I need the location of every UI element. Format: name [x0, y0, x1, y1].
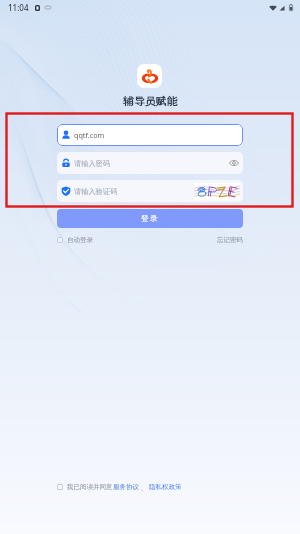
button[interactable]: 忘记密码: [217, 236, 243, 244]
staticText: 我已阅读并同意: [67, 483, 113, 491]
button[interactable]: 隐私权政策: [149, 483, 182, 491]
button[interactable]: 请输入验证码: [57, 180, 243, 202]
staticText: 辅导员赋能: [123, 95, 178, 108]
button[interactable]: 登录: [57, 209, 243, 228]
staticText: 自动登录: [67, 236, 93, 244]
button[interactable]: 服务协议: [113, 483, 139, 491]
staticText: 登录: [141, 214, 160, 223]
staticText: qqtf.com: [74, 130, 105, 140]
staticText: 11:04: [8, 2, 29, 13]
staticText: 请输入验证码: [74, 187, 118, 196]
staticText: 请输入密码: [74, 159, 110, 168]
staticText: 、: [139, 483, 149, 492]
button[interactable]: 自动登录: [57, 236, 93, 244]
button[interactable]: Show password: [229, 158, 239, 168]
button[interactable]: [57, 484, 63, 490]
button[interactable]: qqtf.com: [57, 124, 243, 146]
button[interactable]: 请输入密码: [57, 152, 243, 174]
button[interactable]: Refresh captcha: [194, 183, 240, 200]
